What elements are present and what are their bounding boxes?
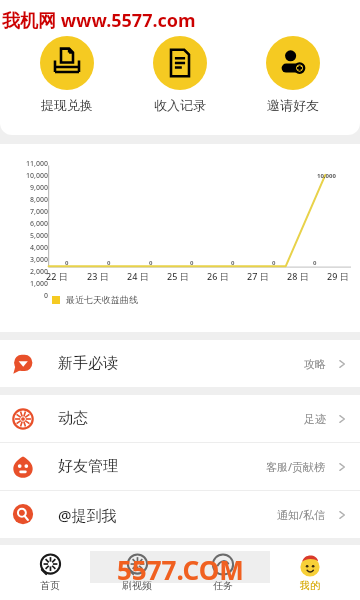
staticText: 邀请好友	[267, 97, 319, 113]
staticText: 1,000	[30, 279, 48, 289]
staticText: 29 日	[327, 270, 349, 282]
staticText: 0	[43, 291, 48, 301]
staticText: 新手必读	[58, 354, 118, 373]
button[interactable]: 任务	[187, 553, 259, 592]
staticText: 0	[190, 259, 194, 267]
staticText: 10,000	[26, 171, 48, 181]
staticText: 0	[149, 259, 153, 267]
staticText: 4,000	[30, 243, 48, 253]
button[interactable]: 邀请好友	[247, 36, 339, 113]
staticText: 我的	[300, 579, 320, 592]
staticText: 首页	[40, 579, 60, 592]
staticText: 22 日	[46, 270, 68, 282]
staticText: 足迹	[304, 412, 326, 426]
staticText: 3,000	[30, 255, 48, 265]
staticText: 收入记录	[154, 97, 206, 113]
staticText: 23 日	[87, 270, 109, 282]
staticText: 8,000	[30, 195, 48, 205]
staticText: 25 日	[167, 270, 189, 282]
staticText: 我机网 www.5577.com	[2, 8, 196, 33]
staticText: 5577.COM	[117, 552, 244, 587]
staticText: 9,000	[30, 183, 48, 193]
staticText: 客服/贡献榜	[266, 459, 326, 474]
button[interactable]: 提现兑换	[21, 36, 113, 113]
staticText: 通知/私信	[277, 507, 326, 522]
staticText: 2,000	[30, 267, 48, 277]
button[interactable]: 好友管理	[0, 443, 360, 490]
staticText: 好友管理	[58, 457, 118, 476]
button[interactable]: 收入记录	[134, 36, 226, 113]
staticText: 7,000	[30, 207, 48, 217]
button[interactable]: 刷视频	[101, 553, 173, 592]
staticText: 0	[272, 259, 276, 267]
staticText: 0	[313, 259, 317, 267]
button[interactable]: @提到我	[0, 491, 360, 538]
staticText: 任务	[213, 579, 233, 592]
staticText: 最近七天收益曲线	[66, 294, 138, 305]
staticText: 刷视频	[122, 579, 152, 592]
staticText: 24 日	[127, 270, 149, 282]
staticText: 0	[231, 259, 235, 267]
staticText: 6,000	[30, 219, 48, 229]
staticText: 10,000	[317, 172, 336, 180]
staticText: 5,000	[30, 231, 48, 241]
staticText: 0	[65, 259, 69, 267]
staticText: 28 日	[287, 270, 309, 282]
button[interactable]: 动态	[0, 395, 360, 442]
button[interactable]: 新手必读	[0, 340, 360, 387]
staticText: 0	[107, 259, 111, 267]
button[interactable]: 我的	[274, 553, 346, 592]
staticText: 27 日	[247, 270, 269, 282]
staticText: 动态	[58, 409, 88, 428]
button[interactable]: 首页	[14, 553, 86, 592]
staticText: 26 日	[207, 270, 229, 282]
staticText: 攻略	[304, 357, 326, 371]
staticText: 提现兑换	[41, 97, 93, 113]
staticText: 11,000	[26, 159, 48, 169]
staticText: @提到我	[58, 505, 117, 525]
